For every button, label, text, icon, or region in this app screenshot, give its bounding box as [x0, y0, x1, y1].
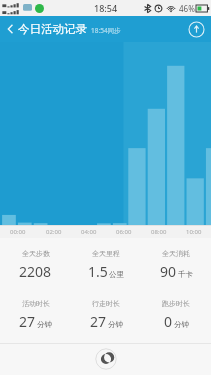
staticText: 18:54: [94, 2, 118, 14]
staticText: 全天里程: [92, 249, 120, 258]
button[interactable]: 活动时长: [0, 297, 71, 333]
staticText: 今日活动记录: [18, 22, 87, 36]
button[interactable]: 全天里程: [71, 247, 141, 283]
staticText: 0: [164, 312, 173, 331]
button[interactable]: Sync: [188, 21, 205, 38]
staticText: 04:00: [81, 228, 97, 236]
button[interactable]: 跑步时长: [141, 297, 211, 333]
staticText: 10:00: [186, 228, 202, 236]
staticText: 公里: [109, 270, 124, 279]
staticText: 行走时长: [92, 299, 120, 308]
staticText: 千卡: [178, 270, 193, 279]
staticText: 分钟: [108, 320, 123, 329]
staticText: 分钟: [174, 320, 189, 329]
staticText: 00:00: [10, 228, 26, 236]
staticText: 全天步数: [22, 249, 50, 258]
staticText: 08:00: [151, 228, 167, 236]
staticText: 90: [160, 262, 177, 281]
staticText: 27: [90, 312, 107, 331]
button[interactable]: 行走时长: [71, 297, 141, 333]
staticText: 02:00: [46, 228, 62, 236]
staticText: 27: [19, 312, 36, 331]
button[interactable]: Back: [0, 19, 17, 39]
staticText: 全天消耗: [162, 249, 190, 258]
staticText: 18:54同步: [91, 26, 121, 35]
staticText: 跑步时长: [162, 299, 190, 308]
button[interactable]: Sleep: [95, 348, 117, 370]
staticText: 06:00: [116, 228, 132, 236]
staticText: 46%: [179, 3, 195, 14]
staticText: 2208: [19, 262, 52, 281]
staticText: 活动时长: [22, 299, 50, 308]
button[interactable]: 全天消耗: [141, 247, 211, 283]
staticText: 1.5: [88, 262, 108, 281]
button[interactable]: 全天步数: [0, 247, 71, 283]
staticText: 分钟: [37, 320, 52, 329]
